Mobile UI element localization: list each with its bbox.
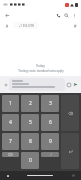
- staticText: 5: [29, 119, 32, 126]
- staticText: Today: [36, 64, 45, 68]
- staticText: 8: [29, 138, 32, 145]
- staticText: Texting costs: standard rates apply: [18, 69, 64, 73]
- button[interactable]: +1 555-0199: [13, 22, 39, 29]
- button[interactable]: 0: [21, 152, 39, 169]
- button[interactable]: Switch keyboard: [71, 173, 76, 178]
- button[interactable]: Symbols: [2, 152, 19, 157]
- staticText: 1: [9, 100, 12, 107]
- button[interactable]: Enter: [61, 133, 79, 169]
- staticText: 9: [49, 138, 52, 145]
- staticText: 3: [49, 100, 52, 107]
- button[interactable]: 1: [2, 95, 19, 112]
- button[interactable]: Hide keyboard: [5, 173, 10, 178]
- button[interactable]: 8: [21, 133, 39, 150]
- button[interactable]: 6: [41, 114, 59, 131]
- button[interactable]: Add contact: [71, 22, 78, 29]
- staticText: 6: [49, 119, 52, 126]
- staticText: 2: [29, 100, 32, 107]
- button[interactable]: Add attachment: [2, 81, 9, 88]
- button[interactable]: Call: [54, 11, 62, 19]
- button[interactable]: 2: [21, 95, 39, 112]
- button[interactable]: Back: [3, 11, 11, 19]
- button[interactable]: 5: [21, 114, 39, 131]
- button[interactable]: [9, 78, 65, 91]
- button[interactable]: Emoji: [66, 82, 72, 88]
- button[interactable]: Contact: [3, 22, 10, 29]
- button[interactable]: Backspace: [61, 95, 79, 131]
- button[interactable]: 3: [41, 95, 59, 112]
- button[interactable]: 9: [41, 133, 59, 150]
- button[interactable]: 4: [2, 114, 19, 131]
- button[interactable]: Period: [41, 152, 59, 157]
- button[interactable]: Search: [62, 11, 70, 19]
- staticText: 0: [29, 157, 32, 164]
- staticText: +1 555-0199: [19, 24, 34, 28]
- staticText: 7: [9, 138, 12, 145]
- button[interactable]: More options: [70, 11, 78, 19]
- staticText: 4: [9, 119, 12, 126]
- button[interactable]: 7: [2, 133, 19, 150]
- button[interactable]: Send: [72, 81, 79, 88]
